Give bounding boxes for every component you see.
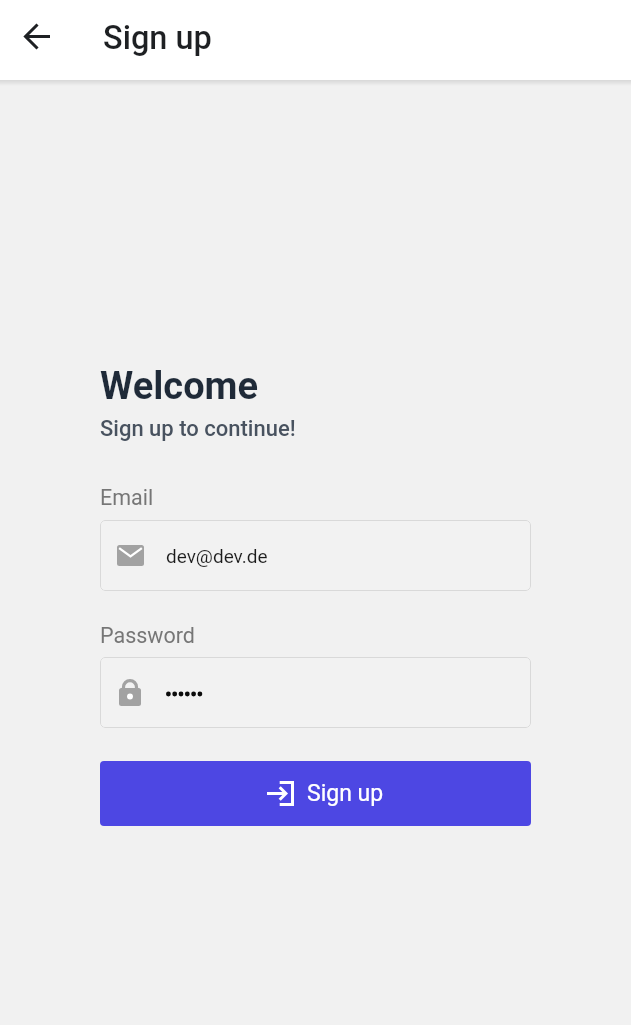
staticText: Email — [100, 485, 154, 510]
button[interactable] — [100, 657, 531, 728]
staticText: Welcome — [100, 364, 259, 409]
staticText: Sign up — [103, 19, 212, 57]
staticText: Sign up — [307, 780, 384, 807]
button[interactable]: Back — [9, 8, 65, 64]
button[interactable]: dev@dev.de — [100, 520, 531, 591]
staticText: Sign up to continue! — [100, 416, 296, 442]
button[interactable]: Sign up — [100, 761, 531, 826]
staticText: dev@dev.de — [166, 545, 268, 567]
staticText: Password — [100, 623, 195, 648]
